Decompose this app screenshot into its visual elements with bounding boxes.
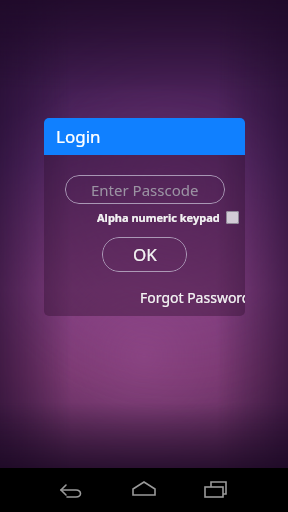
button[interactable]: Forgot Password ? (140, 286, 245, 308)
other: Alpha numeric keypad toggle (226, 211, 239, 224)
button[interactable]: Home (112, 468, 176, 512)
button[interactable]: Enter Passcode (65, 175, 225, 204)
staticText: Enter Passcode (91, 180, 199, 200)
staticText: Forgot Password ? (140, 288, 245, 307)
button[interactable]: Alpha numeric keypad (97, 208, 239, 226)
button[interactable]: OK (102, 237, 187, 272)
staticText: OK (133, 243, 157, 266)
staticText: Alpha numeric keypad (97, 210, 220, 225)
button[interactable]: Recent apps (184, 468, 248, 512)
button[interactable]: Back (40, 468, 104, 512)
staticText: Login (56, 125, 101, 148)
